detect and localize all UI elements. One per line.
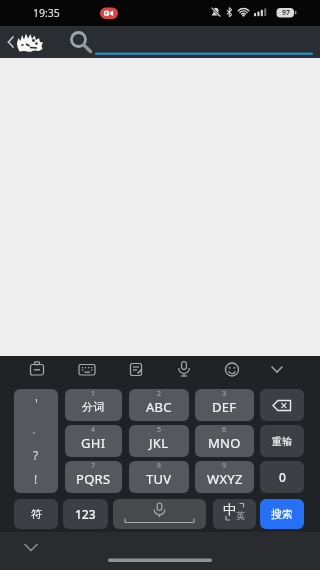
staticText: 、 [32,424,41,435]
staticText: 123 [75,506,96,522]
staticText: JKL [149,434,169,452]
button[interactable] [13,538,49,558]
staticText: 8 [157,461,162,471]
staticText: PQRS [76,470,111,488]
button[interactable]: 7 [65,461,122,493]
button[interactable] [259,356,295,384]
button[interactable] [0,26,26,58]
staticText: WXYZ [207,470,243,488]
staticText: 3 [222,389,227,399]
button[interactable] [166,356,202,384]
staticText: 97 [282,8,291,18]
button[interactable] [19,356,55,384]
button[interactable]: 搜索 [260,499,304,529]
staticText: 1 [91,389,96,399]
button[interactable] [118,356,154,384]
button[interactable] [69,356,105,384]
staticText: 9 [222,461,227,471]
staticText: 0 [279,469,286,485]
staticText: 6 [222,425,227,435]
button[interactable]: 2 [129,389,189,421]
staticText: 中 [223,501,236,517]
staticText: ABC [146,398,172,416]
button[interactable]: 符 [14,499,58,529]
button[interactable] [214,356,250,384]
button[interactable]: 中 [213,499,256,529]
button[interactable]: 9 [195,461,254,493]
staticText: DEF [212,398,237,416]
button[interactable]: 1 [65,389,122,421]
staticText: 分词 [82,400,105,414]
button[interactable]: 4 [65,425,122,457]
button[interactable] [260,389,304,421]
staticText: ! [34,471,38,487]
staticText: TUV [146,470,172,488]
staticText: 重输 [272,435,292,448]
staticText: 符 [31,507,42,521]
staticText: ? [33,447,39,463]
staticText: 5 [157,425,162,435]
button[interactable]: 重输 [260,425,304,457]
button[interactable]: 3 [195,389,254,421]
staticText: MNO [208,434,241,452]
staticText: 2 [157,389,162,399]
staticText: 搜索 [271,507,293,521]
staticText: 19:35 [33,6,60,20]
button[interactable] [113,499,206,529]
button[interactable]: 123 [63,499,108,529]
staticText: 7 [91,461,96,471]
staticText: ' [35,394,38,410]
button[interactable]: 6 [195,425,254,457]
button[interactable]: ' [14,389,58,493]
staticText: 4 [91,425,96,435]
button[interactable]: 8 [129,461,189,493]
button[interactable] [62,26,314,58]
staticText: 英 [236,510,245,521]
staticText: GHI [81,434,106,452]
button[interactable]: 5 [129,425,189,457]
button[interactable]: 0 [260,461,304,493]
